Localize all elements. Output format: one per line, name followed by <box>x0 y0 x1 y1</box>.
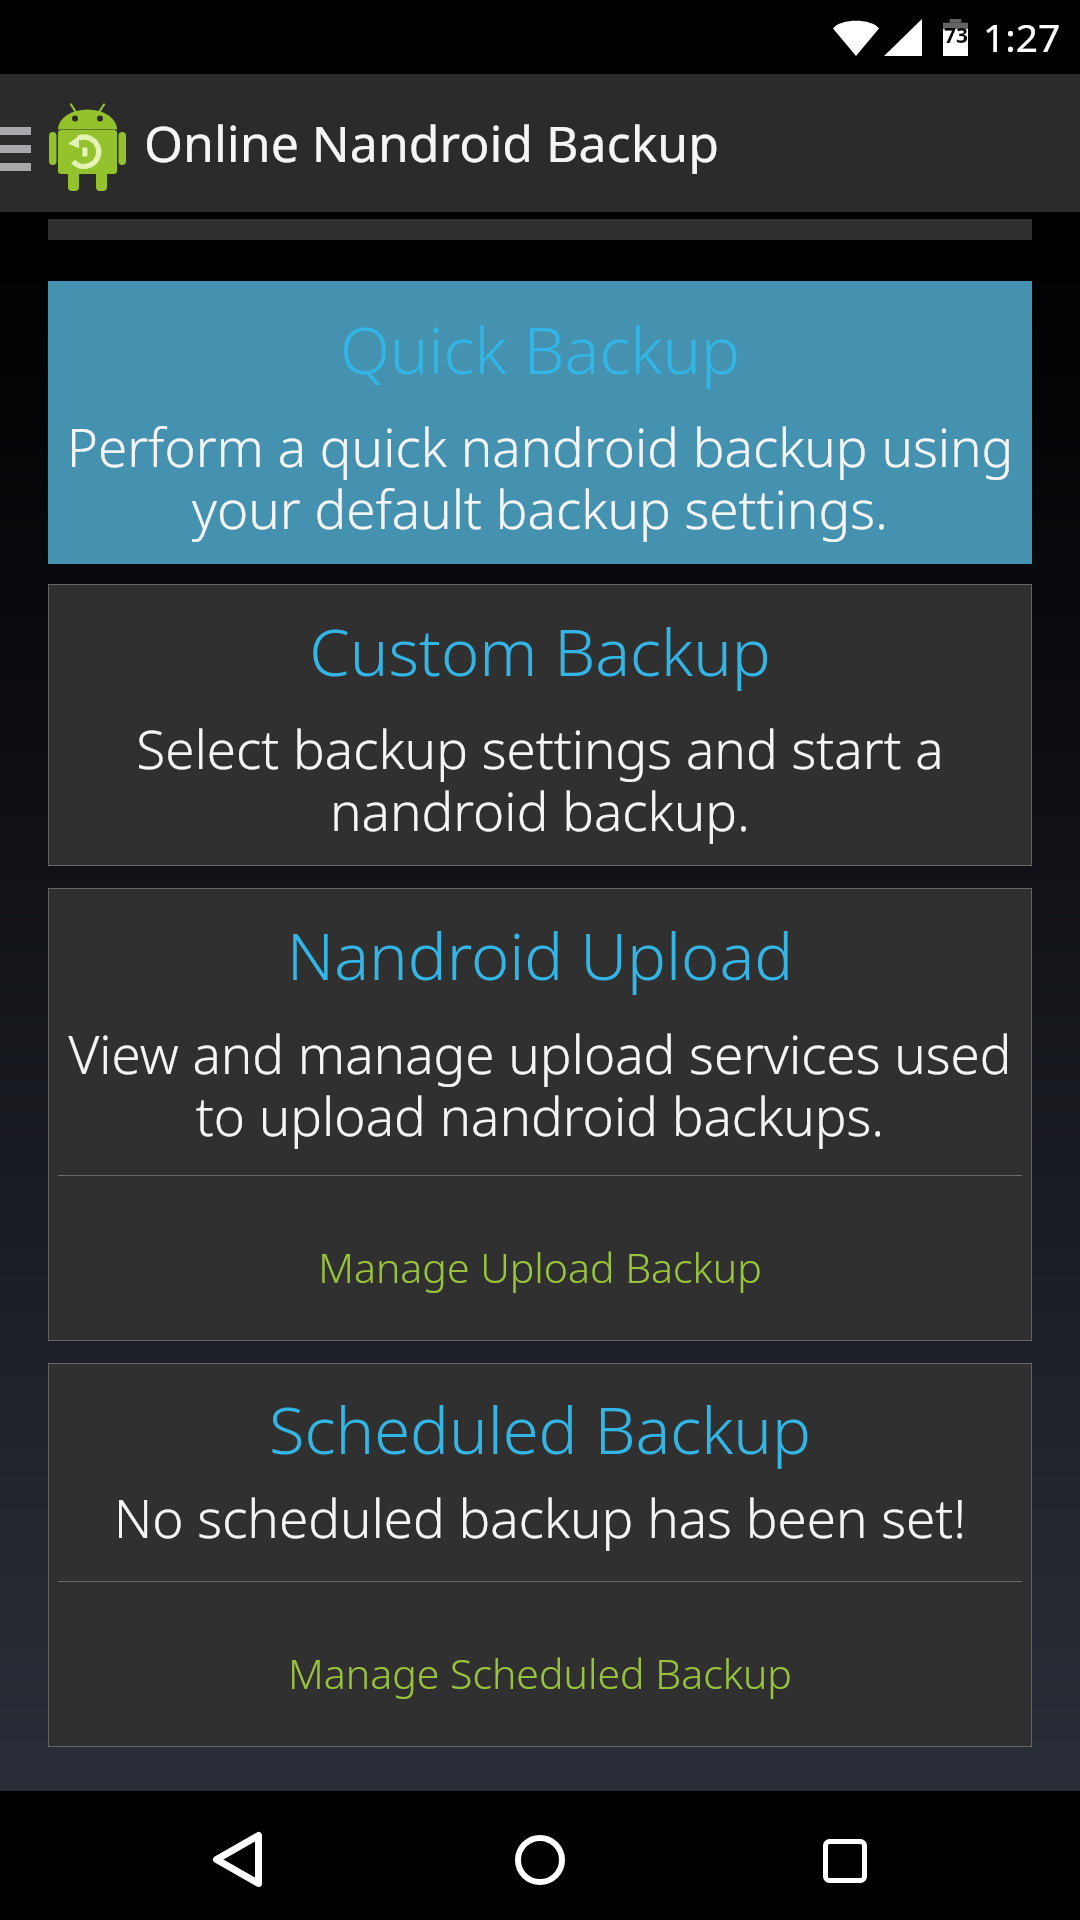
staticText: Scheduled Backup <box>48 1385 1032 1474</box>
button[interactable]: Recent apps <box>755 1796 935 1920</box>
staticText: Online Nandroid Backup <box>144 109 719 177</box>
button[interactable]: Custom Backup <box>48 584 1032 866</box>
button[interactable]: Scheduled Backup <box>48 1363 1032 1747</box>
staticText: Nandroid Upload <box>48 911 1032 1000</box>
staticText: Select backup settings and start a nandr… <box>48 712 1032 847</box>
staticText: Custom Backup <box>48 607 1032 696</box>
button[interactable]: Open navigation drawer <box>0 74 31 212</box>
staticText: Manage Upload Backup <box>48 1239 1032 1295</box>
button[interactable]: Manage Scheduled Backup <box>48 1582 1032 1747</box>
staticText: 73 <box>944 21 969 50</box>
staticText: Manage Scheduled Backup <box>48 1645 1032 1701</box>
staticText: 1:27 <box>983 10 1061 63</box>
button[interactable]: Nandroid Upload <box>48 888 1032 1341</box>
button[interactable]: Quick Backup <box>48 281 1032 564</box>
staticText: Perform a quick nandroid backup using yo… <box>48 410 1032 545</box>
button[interactable]: Back <box>147 1795 327 1920</box>
button[interactable]: Manage Upload Backup <box>48 1176 1032 1341</box>
staticText: No scheduled backup has been set! <box>48 1481 1032 1553</box>
button[interactable]: Nandroid Upload <box>48 888 1032 1175</box>
staticText: View and manage upload services used to … <box>48 1017 1032 1152</box>
button[interactable]: Scheduled Backup <box>48 1363 1032 1581</box>
staticText: Quick Backup <box>48 305 1032 394</box>
button[interactable]: Home <box>450 1795 630 1920</box>
